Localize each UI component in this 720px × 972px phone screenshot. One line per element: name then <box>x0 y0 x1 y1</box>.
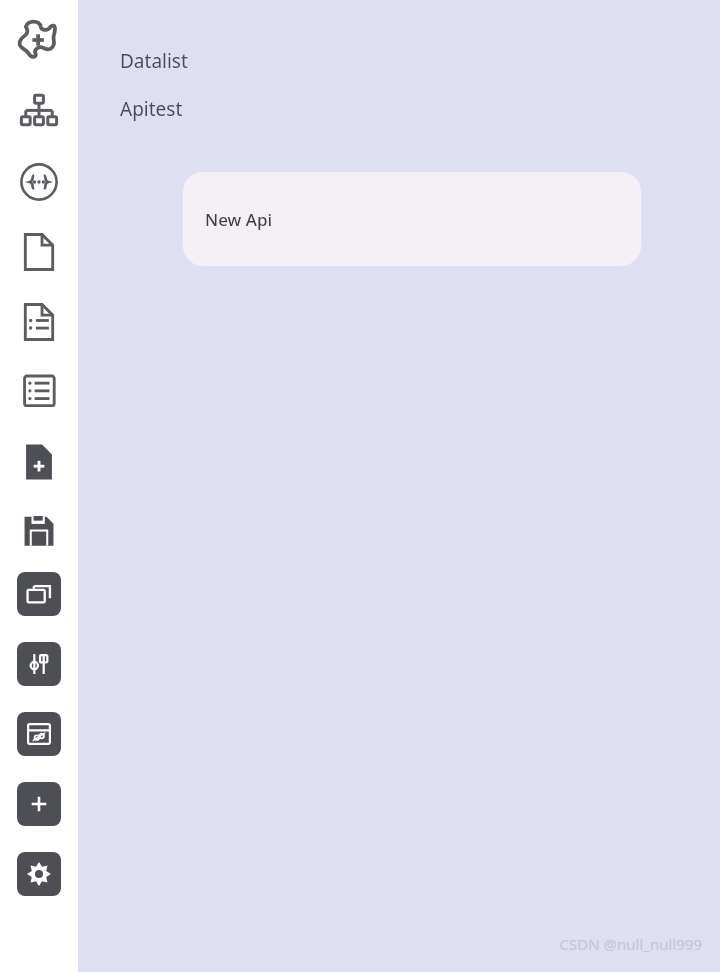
staticText: CSDN @null_null999 <box>559 934 702 954</box>
button[interactable]: Apitest <box>120 96 183 122</box>
button[interactable]: Structure <box>11 84 67 140</box>
button[interactable]: Datalist <box>120 48 188 74</box>
button[interactable]: New Api <box>183 172 641 266</box>
button[interactable]: Document list <box>11 294 67 350</box>
button[interactable]: Copy window <box>17 572 61 616</box>
button[interactable]: Add plugin <box>11 12 67 68</box>
button[interactable]: JSON <box>11 154 67 210</box>
button[interactable]: Create file <box>11 434 67 490</box>
button[interactable]: Settings <box>17 852 61 896</box>
button[interactable]: Link browser <box>17 712 61 756</box>
button[interactable]: New document <box>11 224 67 280</box>
button[interactable]: List <box>11 364 67 420</box>
button[interactable]: Settings sliders <box>17 642 61 686</box>
button[interactable]: Add <box>17 782 61 826</box>
button[interactable]: Save <box>11 504 67 560</box>
staticText: New Api <box>205 208 273 231</box>
